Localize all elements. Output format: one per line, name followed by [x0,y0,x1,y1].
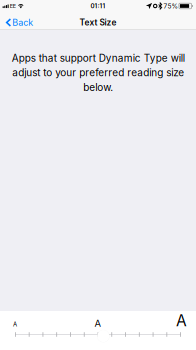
staticText: Text Size [79,17,116,28]
staticText: A [176,311,187,330]
staticText: Back [12,17,33,28]
staticText: EE [10,3,16,9]
staticText: A [13,321,17,328]
staticText: A [94,317,101,329]
staticText: 01:11 [90,2,105,10]
staticText: Apps that support Dynamic Type will adju… [11,52,184,93]
staticText: 75% [163,2,177,10]
button[interactable]: Back [0,12,37,30]
